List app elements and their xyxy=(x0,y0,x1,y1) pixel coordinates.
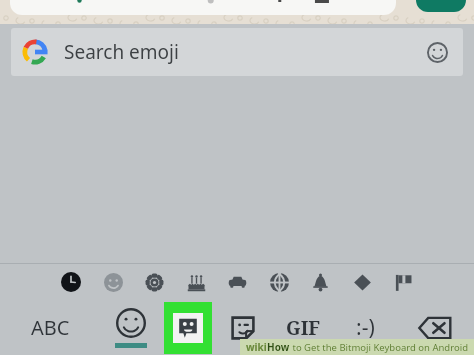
button[interactable]: Emoji xyxy=(100,300,162,355)
button[interactable]: Smileys xyxy=(98,267,128,297)
staticText: :-) xyxy=(356,313,375,342)
button[interactable]: New chat xyxy=(416,0,466,12)
button[interactable]: Objects xyxy=(305,267,335,297)
staticText: How xyxy=(267,340,290,354)
button[interactable]: :-) xyxy=(334,300,396,355)
staticText: Search emoji xyxy=(64,39,179,65)
button[interactable]: ABC xyxy=(0,300,100,355)
staticText: GIF xyxy=(286,315,321,341)
button[interactable]: Backspace xyxy=(400,300,470,355)
button[interactable]: Travel xyxy=(222,267,252,297)
button[interactable]: Flags xyxy=(388,267,418,297)
button[interactable]: Nature xyxy=(139,267,169,297)
button[interactable]: Symbols xyxy=(347,267,377,297)
button[interactable]: GIF xyxy=(272,300,334,355)
staticText: to Get the Bitmoji Keyboard on Android xyxy=(290,341,468,354)
button[interactable]: Emoji xyxy=(417,32,457,72)
button[interactable]: Bitmoji xyxy=(162,300,214,355)
staticText: ABC xyxy=(31,314,70,341)
button[interactable]: Stickers xyxy=(214,300,272,355)
button[interactable]: Food xyxy=(181,267,211,297)
staticText: wiki xyxy=(246,340,267,354)
button[interactable]: Recent xyxy=(56,267,86,297)
button[interactable]: Search emoji xyxy=(11,28,463,76)
button[interactable]: Activities xyxy=(264,267,294,297)
